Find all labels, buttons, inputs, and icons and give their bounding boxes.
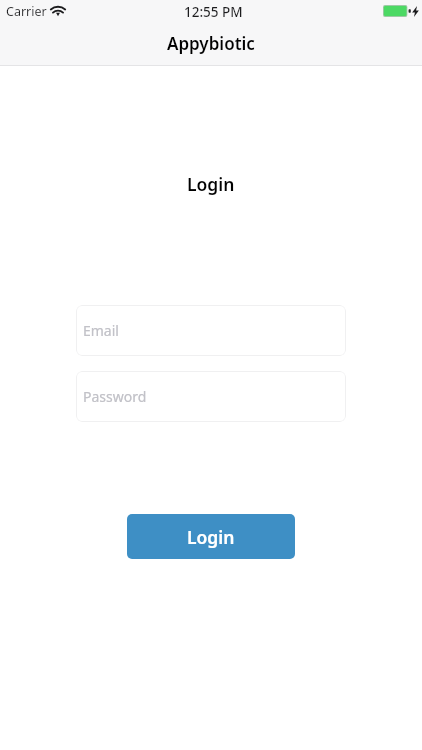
staticText: Appybiotic bbox=[167, 32, 255, 55]
staticText: Login bbox=[187, 525, 235, 549]
staticText: Password bbox=[83, 387, 147, 406]
other: Wi-Fi signal bbox=[52, 6, 64, 16]
button[interactable]: Password bbox=[76, 371, 346, 422]
other: Battery full, charging bbox=[383, 5, 419, 17]
staticText: 12:55 PM bbox=[184, 3, 243, 21]
button[interactable]: Email bbox=[76, 305, 346, 356]
staticText: Login bbox=[187, 172, 235, 196]
staticText: Carrier bbox=[6, 3, 47, 20]
staticText: Email bbox=[83, 321, 119, 340]
button[interactable]: Login bbox=[127, 514, 295, 559]
